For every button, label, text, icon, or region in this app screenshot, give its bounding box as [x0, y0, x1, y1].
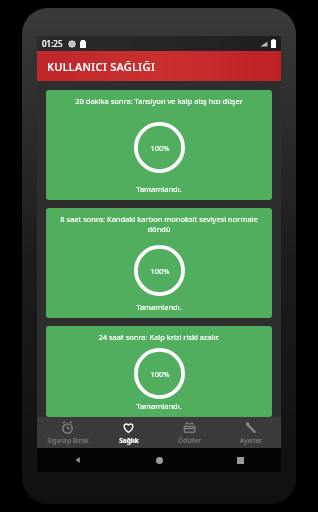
staticText: 01:25	[42, 38, 63, 49]
button[interactable]: Recent apps	[200, 448, 281, 472]
staticText: 24 saat sonra: Kalp krizi riski azalır.	[52, 332, 266, 342]
staticText: Tamamlandı.	[52, 302, 266, 312]
button[interactable]: Ayarlar	[220, 417, 281, 448]
button[interactable]: Sigarayı Bırak	[37, 417, 98, 448]
staticText: 20 dakika sonra: Tansiyon ve kalp atış h…	[52, 96, 266, 106]
button[interactable]: 8 saat sonra: Kandaki karbon monoksit se…	[46, 208, 272, 318]
staticText: 8 saat sonra: Kandaki karbon monoksit se…	[52, 214, 266, 234]
button[interactable]: Ödüller	[159, 417, 220, 448]
button[interactable]: 20 dakika sonra: Tansiyon ve kalp atış h…	[46, 90, 272, 200]
staticText: 100%	[150, 369, 170, 379]
staticText: Sigarayı Bırak	[47, 436, 89, 445]
staticText: 100%	[150, 143, 170, 153]
button[interactable]: Back	[37, 448, 119, 472]
button[interactable]: Home	[119, 448, 200, 472]
staticText: KULLANICI SAĞLIĞI	[47, 59, 155, 74]
staticText: Ayarlar	[240, 436, 262, 445]
staticText: Ödüller	[178, 436, 201, 445]
staticText: 100%	[150, 266, 170, 276]
staticText: Sağlık	[119, 436, 139, 445]
staticText: Tamamlandı.	[52, 184, 266, 194]
button[interactable]: KULLANICI SAĞLIĞI	[37, 51, 281, 81]
button[interactable]: 24 saat sonra: Kalp krizi riski azalır.	[46, 326, 272, 417]
staticText: Tamamlandı.	[52, 401, 266, 411]
button[interactable]: Sağlık	[98, 417, 159, 448]
